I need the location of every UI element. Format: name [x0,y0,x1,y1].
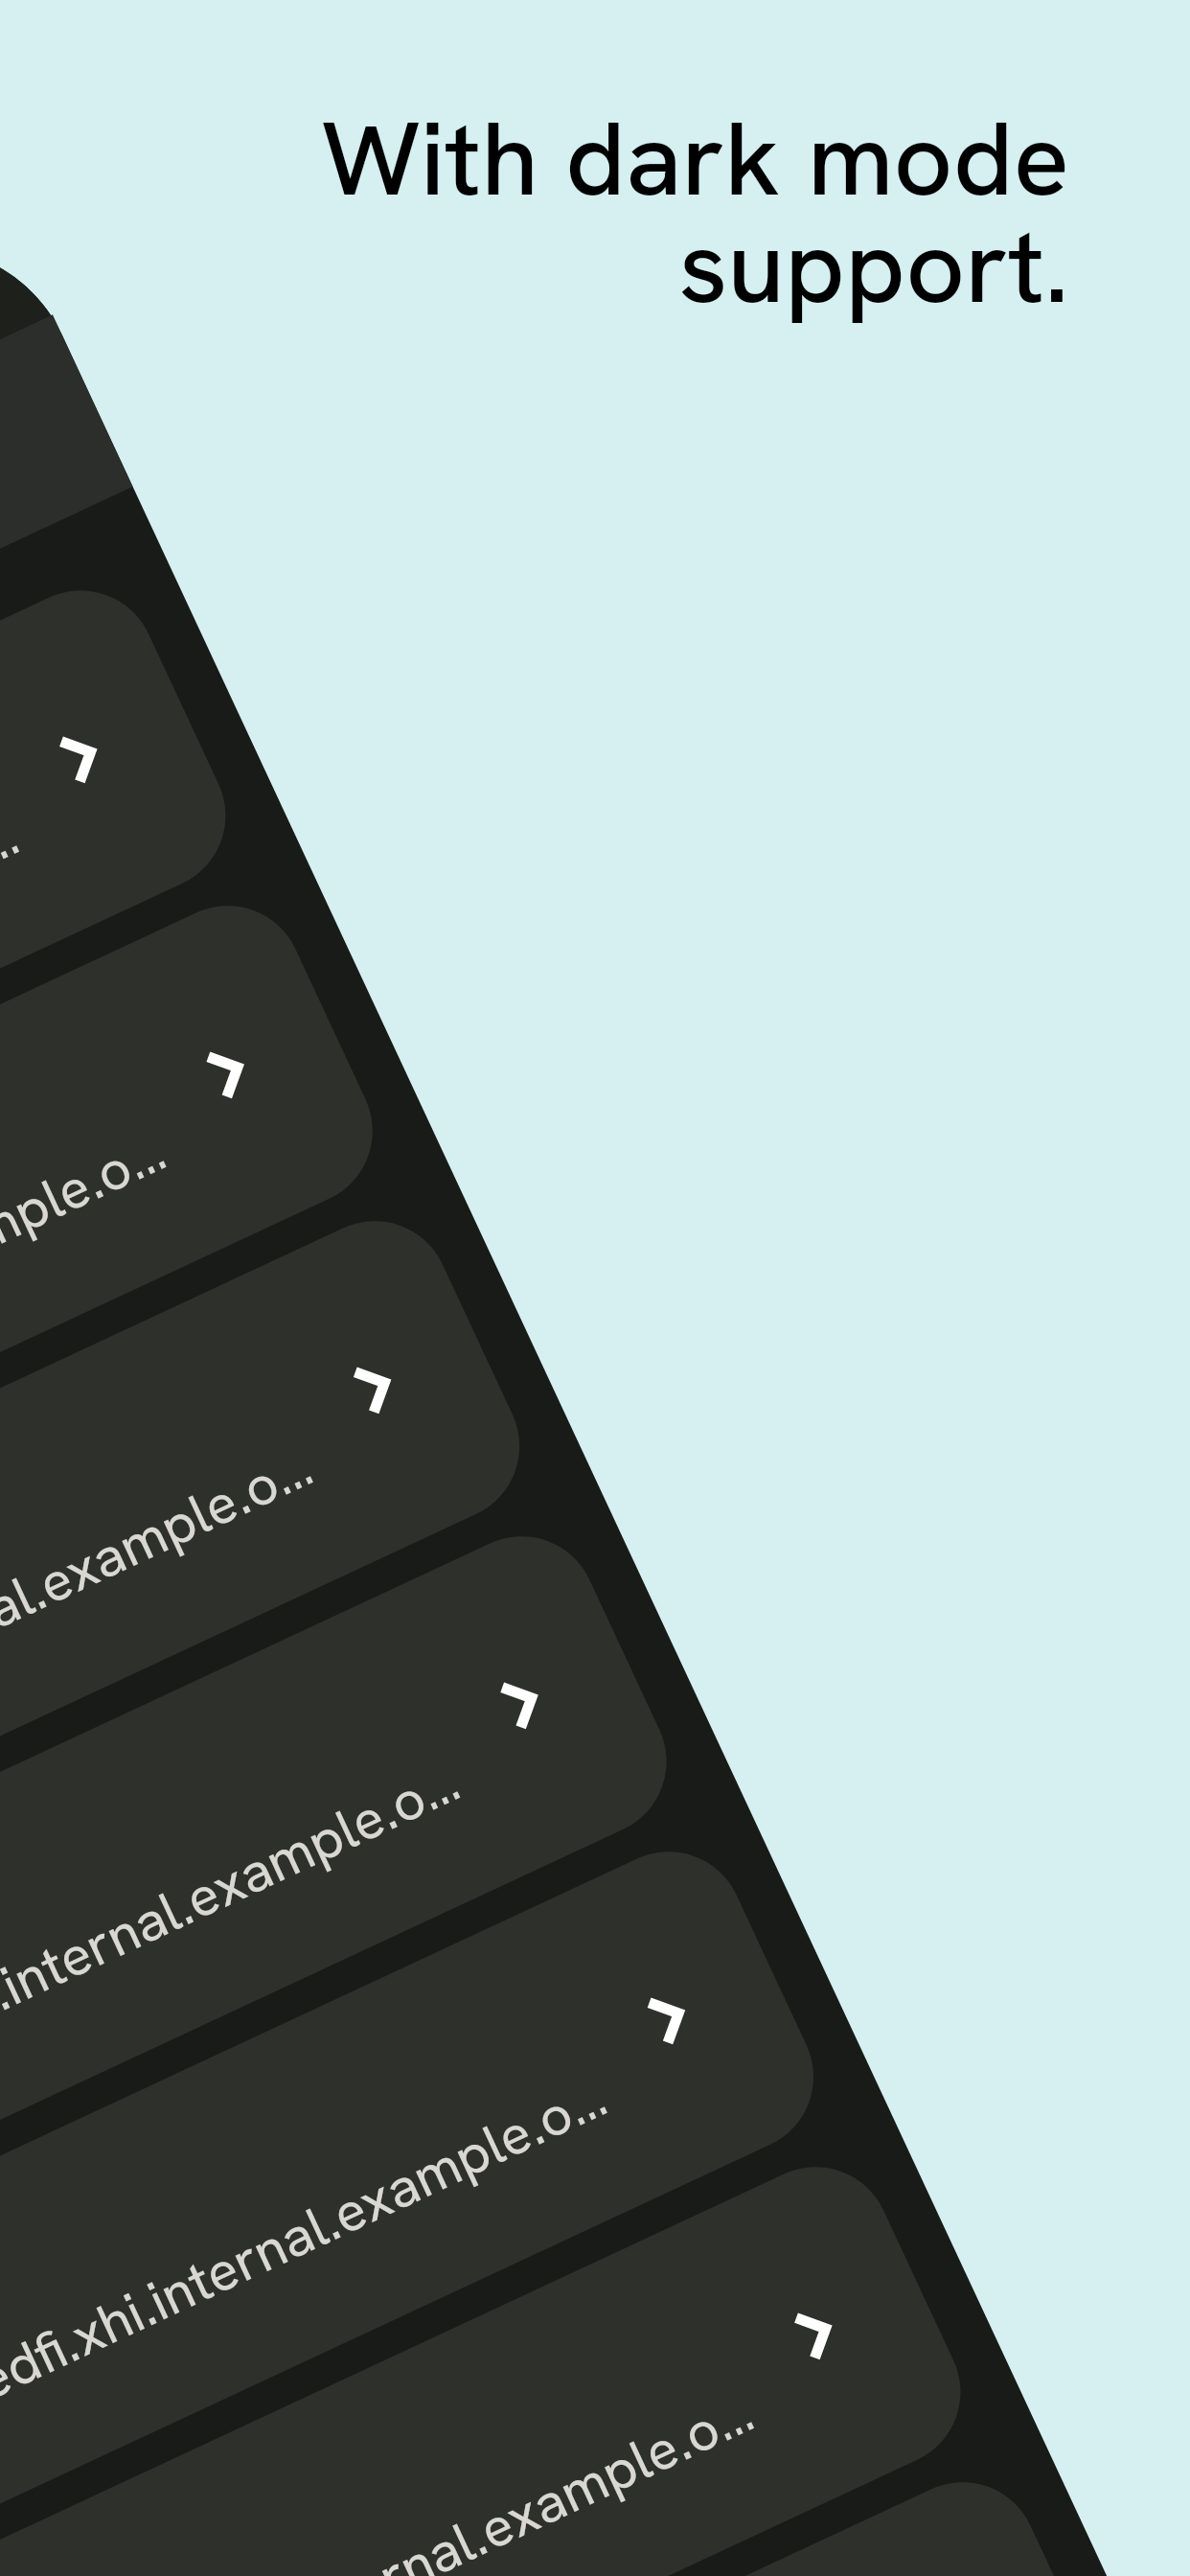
button[interactable]: Connections list [0,0,1190,2576]
staticText: With dark mode support. [245,91,1069,333]
